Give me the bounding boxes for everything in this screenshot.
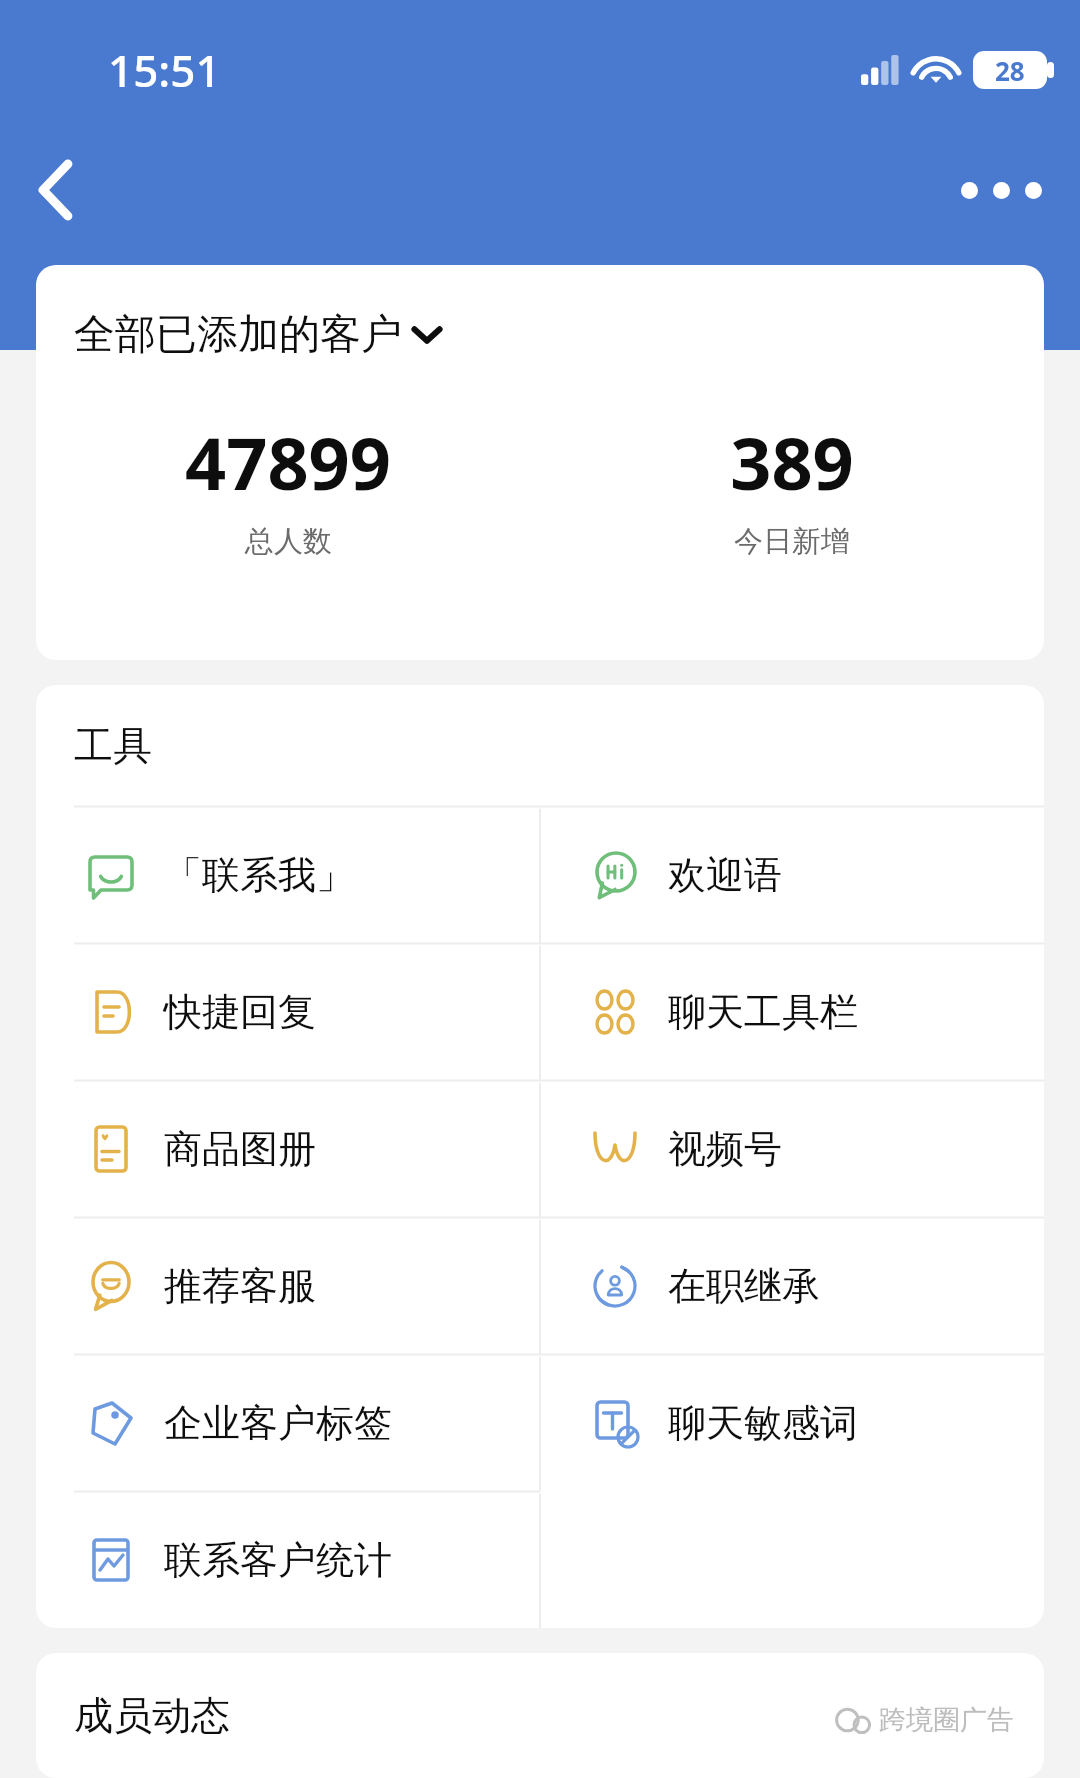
staticText: 视频号 — [668, 1125, 782, 1173]
staticText: 联系客户统计 — [164, 1536, 392, 1584]
button[interactable]: 商品图册 — [36, 1080, 540, 1217]
staticText: 商品图册 — [164, 1125, 316, 1173]
button[interactable]: 47899 — [36, 413, 540, 560]
staticText: 389 — [730, 413, 854, 511]
button[interactable]: 推荐客服 — [36, 1217, 540, 1354]
staticText: 「联系我」 — [164, 851, 354, 899]
staticText: 今日新增 — [734, 523, 850, 560]
button[interactable]: 在职继承 — [540, 1217, 1044, 1354]
button[interactable]: 快捷回复 — [36, 943, 540, 1080]
staticText: 推荐客服 — [164, 1262, 316, 1310]
button[interactable]: 「联系我」 — [36, 806, 540, 943]
staticText: 成员动态 — [74, 1691, 230, 1740]
button[interactable]: 联系客户统计 — [36, 1491, 540, 1628]
button[interactable]: 欢迎语 — [540, 806, 1044, 943]
staticText: 聊天敏感词 — [668, 1399, 858, 1447]
staticText: 欢迎语 — [668, 851, 782, 899]
staticText: 全部已添加的客户 — [74, 309, 402, 361]
staticText: 在职继承 — [668, 1262, 820, 1310]
staticText: 47899 — [185, 413, 391, 511]
button[interactable]: 企业客户标签 — [36, 1354, 540, 1491]
button[interactable]: 389 — [540, 413, 1044, 560]
button[interactable]: 全部已添加的客户 — [74, 309, 442, 361]
staticText: 总人数 — [245, 523, 332, 560]
button[interactable]: 聊天敏感词 — [540, 1354, 1044, 1491]
button[interactable]: More options — [946, 142, 1056, 238]
button[interactable]: Back — [8, 142, 104, 238]
staticText: 跨境圈广告 — [879, 1703, 1014, 1737]
staticText: 工具 — [74, 721, 152, 770]
button[interactable]: 聊天工具栏 — [540, 943, 1044, 1080]
staticText: 聊天工具栏 — [668, 988, 858, 1036]
button[interactable]: 视频号 — [540, 1080, 1044, 1217]
staticText: 15:51 — [108, 40, 221, 100]
staticText: 快捷回复 — [164, 988, 316, 1036]
staticText: 企业客户标签 — [164, 1399, 392, 1447]
staticText: 28 — [995, 53, 1025, 88]
